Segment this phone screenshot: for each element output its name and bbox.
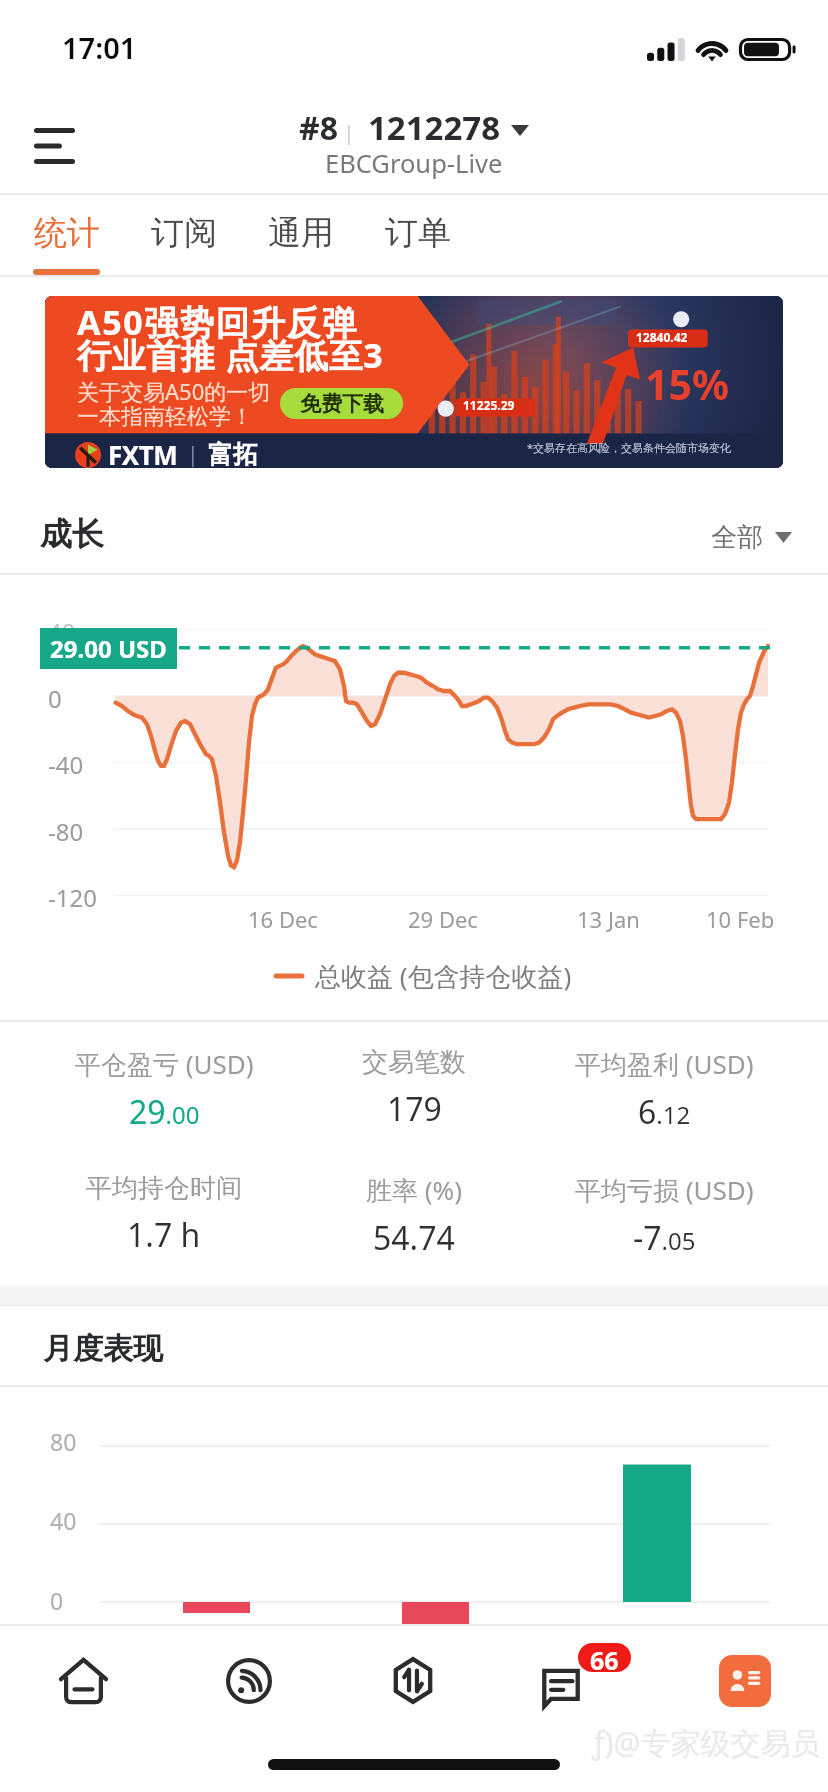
button[interactable]: Trade bbox=[358, 1625, 468, 1736]
staticText: 10 Feb bbox=[706, 904, 775, 934]
staticText: 80 bbox=[50, 1426, 77, 1457]
staticText: 11225.29 bbox=[463, 397, 515, 413]
staticText: 全部 bbox=[711, 521, 763, 554]
staticText: 总收益 (包含持仓收益) bbox=[315, 958, 572, 994]
button[interactable]: 胜率 (%) bbox=[289, 1172, 539, 1292]
staticText: 16 Dec bbox=[248, 904, 318, 934]
button[interactable]: 订阅 bbox=[125, 195, 242, 277]
staticText: 富拓 bbox=[208, 439, 258, 468]
staticText: 29.00 USD bbox=[50, 632, 167, 665]
staticText: 通用 bbox=[268, 212, 334, 254]
staticText: 交易笔数 bbox=[362, 1046, 466, 1079]
staticText: EBCGroup-Live bbox=[325, 146, 503, 181]
staticText: 成长 bbox=[40, 514, 104, 554]
staticText: 1.7 h bbox=[127, 1213, 201, 1257]
staticText: 平均亏损 (USD) bbox=[575, 1172, 754, 1208]
staticText: FXTM bbox=[108, 437, 178, 468]
staticText: #8 | 1212278 bbox=[299, 105, 501, 150]
staticText: 0 bbox=[48, 682, 62, 715]
button[interactable]: 交易笔数 bbox=[289, 1046, 539, 1166]
staticText: 胜率 (%) bbox=[366, 1172, 462, 1208]
button[interactable]: #8 | 1212278 bbox=[299, 105, 529, 185]
staticText: 66 bbox=[590, 1643, 619, 1672]
staticText: *交易存在高风险，交易条件会随市场变化 bbox=[527, 440, 732, 455]
staticText: -7.05 bbox=[633, 1216, 696, 1260]
button[interactable]: Menu bbox=[19, 111, 89, 181]
staticText: 平仓盈亏 (USD) bbox=[75, 1046, 254, 1082]
staticText: 订阅 bbox=[151, 212, 217, 254]
button[interactable]: 免费下载 bbox=[280, 388, 403, 419]
staticText: 行业首推 点差低至3 bbox=[77, 332, 384, 378]
staticText: 0 bbox=[50, 1585, 64, 1616]
staticText: 关于交易A50的一切 bbox=[77, 376, 271, 406]
staticText: 免费下载 bbox=[300, 391, 384, 417]
button[interactable]: 平均盈利 (USD) bbox=[539, 1046, 789, 1166]
staticText: 54.74 bbox=[373, 1216, 455, 1260]
button[interactable]: 平均亏损 (USD) bbox=[539, 1172, 789, 1292]
staticText: -120 bbox=[48, 881, 97, 914]
staticText: 13 Jan bbox=[577, 904, 640, 934]
button[interactable]: 平仓盈亏 (USD) bbox=[39, 1046, 289, 1166]
staticText: 订单 bbox=[385, 212, 451, 254]
button[interactable]: Profile bbox=[690, 1625, 800, 1736]
button[interactable]: 全部 bbox=[711, 521, 792, 554]
staticText: 12840.42 bbox=[636, 329, 688, 345]
staticText: 40 bbox=[50, 1505, 77, 1536]
button[interactable]: 平均持仓时间 bbox=[39, 1172, 289, 1292]
button[interactable]: 订单 bbox=[359, 195, 476, 277]
button[interactable]: 统计 bbox=[8, 195, 125, 277]
staticText: -80 bbox=[48, 815, 84, 848]
button[interactable]: Signals bbox=[194, 1625, 304, 1736]
staticText: 29 Dec bbox=[408, 904, 478, 934]
staticText: 15% bbox=[645, 356, 729, 412]
staticText: 平均持仓时间 bbox=[86, 1172, 242, 1205]
staticText: 29.00 bbox=[129, 1090, 200, 1134]
button[interactable]: 通用 bbox=[242, 195, 359, 277]
button[interactable]: Messages bbox=[524, 1625, 634, 1736]
staticText: | bbox=[187, 440, 199, 468]
staticText: ƒ)@专家级交易员 bbox=[592, 1722, 821, 1763]
staticText: 月度表现 bbox=[43, 1330, 163, 1368]
staticText: 统计 bbox=[34, 212, 100, 254]
staticText: 179 bbox=[387, 1087, 442, 1131]
staticText: 6.12 bbox=[638, 1090, 691, 1134]
staticText: 40 bbox=[48, 615, 76, 648]
staticText: 一本指南轻松学！ bbox=[77, 403, 253, 431]
button[interactable]: Home bbox=[28, 1625, 138, 1736]
button[interactable]: Advertisement bbox=[45, 296, 783, 468]
staticText: 17:01 bbox=[62, 28, 137, 67]
staticText: A50强势回升反弹 bbox=[77, 299, 358, 345]
staticText: 平均盈利 (USD) bbox=[575, 1046, 754, 1082]
staticText: -40 bbox=[48, 748, 84, 781]
